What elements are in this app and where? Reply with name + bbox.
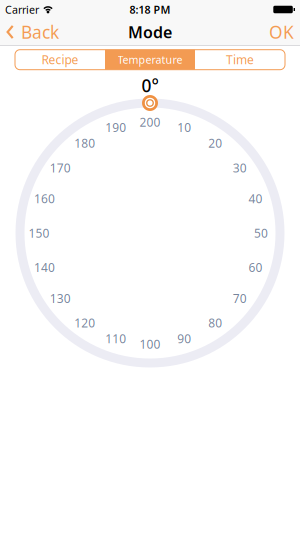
button[interactable]: Temperature [105,50,195,70]
staticText: Mode [128,21,172,43]
staticText: 80 [208,315,222,331]
staticText: 0° [141,74,158,97]
staticText: 190 [105,119,126,135]
staticText: 10 [177,119,191,135]
staticText: 100 [139,336,160,352]
button[interactable]: Back [0,20,59,43]
staticText: 70 [233,290,247,306]
staticText: 150 [28,225,49,241]
staticText: 8:18 PM [129,2,170,17]
staticText: 30 [233,160,247,176]
staticText: 90 [177,331,191,346]
staticText: Time [226,52,254,68]
staticText: 200 [139,114,160,130]
staticText: 140 [34,259,55,275]
button[interactable]: Recipe [15,50,105,70]
staticText: 50 [254,225,268,241]
staticText: 60 [249,259,263,275]
staticText: Temperature [117,53,182,67]
staticText: 40 [249,191,263,207]
staticText: OK [269,20,294,43]
staticText: 20 [208,135,222,151]
staticText: 170 [50,160,71,176]
staticText: 160 [34,191,55,207]
staticText: Carrier [5,2,39,17]
staticText: 110 [105,331,126,346]
staticText: 130 [50,290,71,306]
staticText: Recipe [41,52,78,68]
staticText: Back [21,20,59,43]
staticText: 180 [74,135,95,151]
button[interactable]: OK [269,20,300,43]
button[interactable]: Time [195,50,285,70]
staticText: 120 [74,315,95,331]
